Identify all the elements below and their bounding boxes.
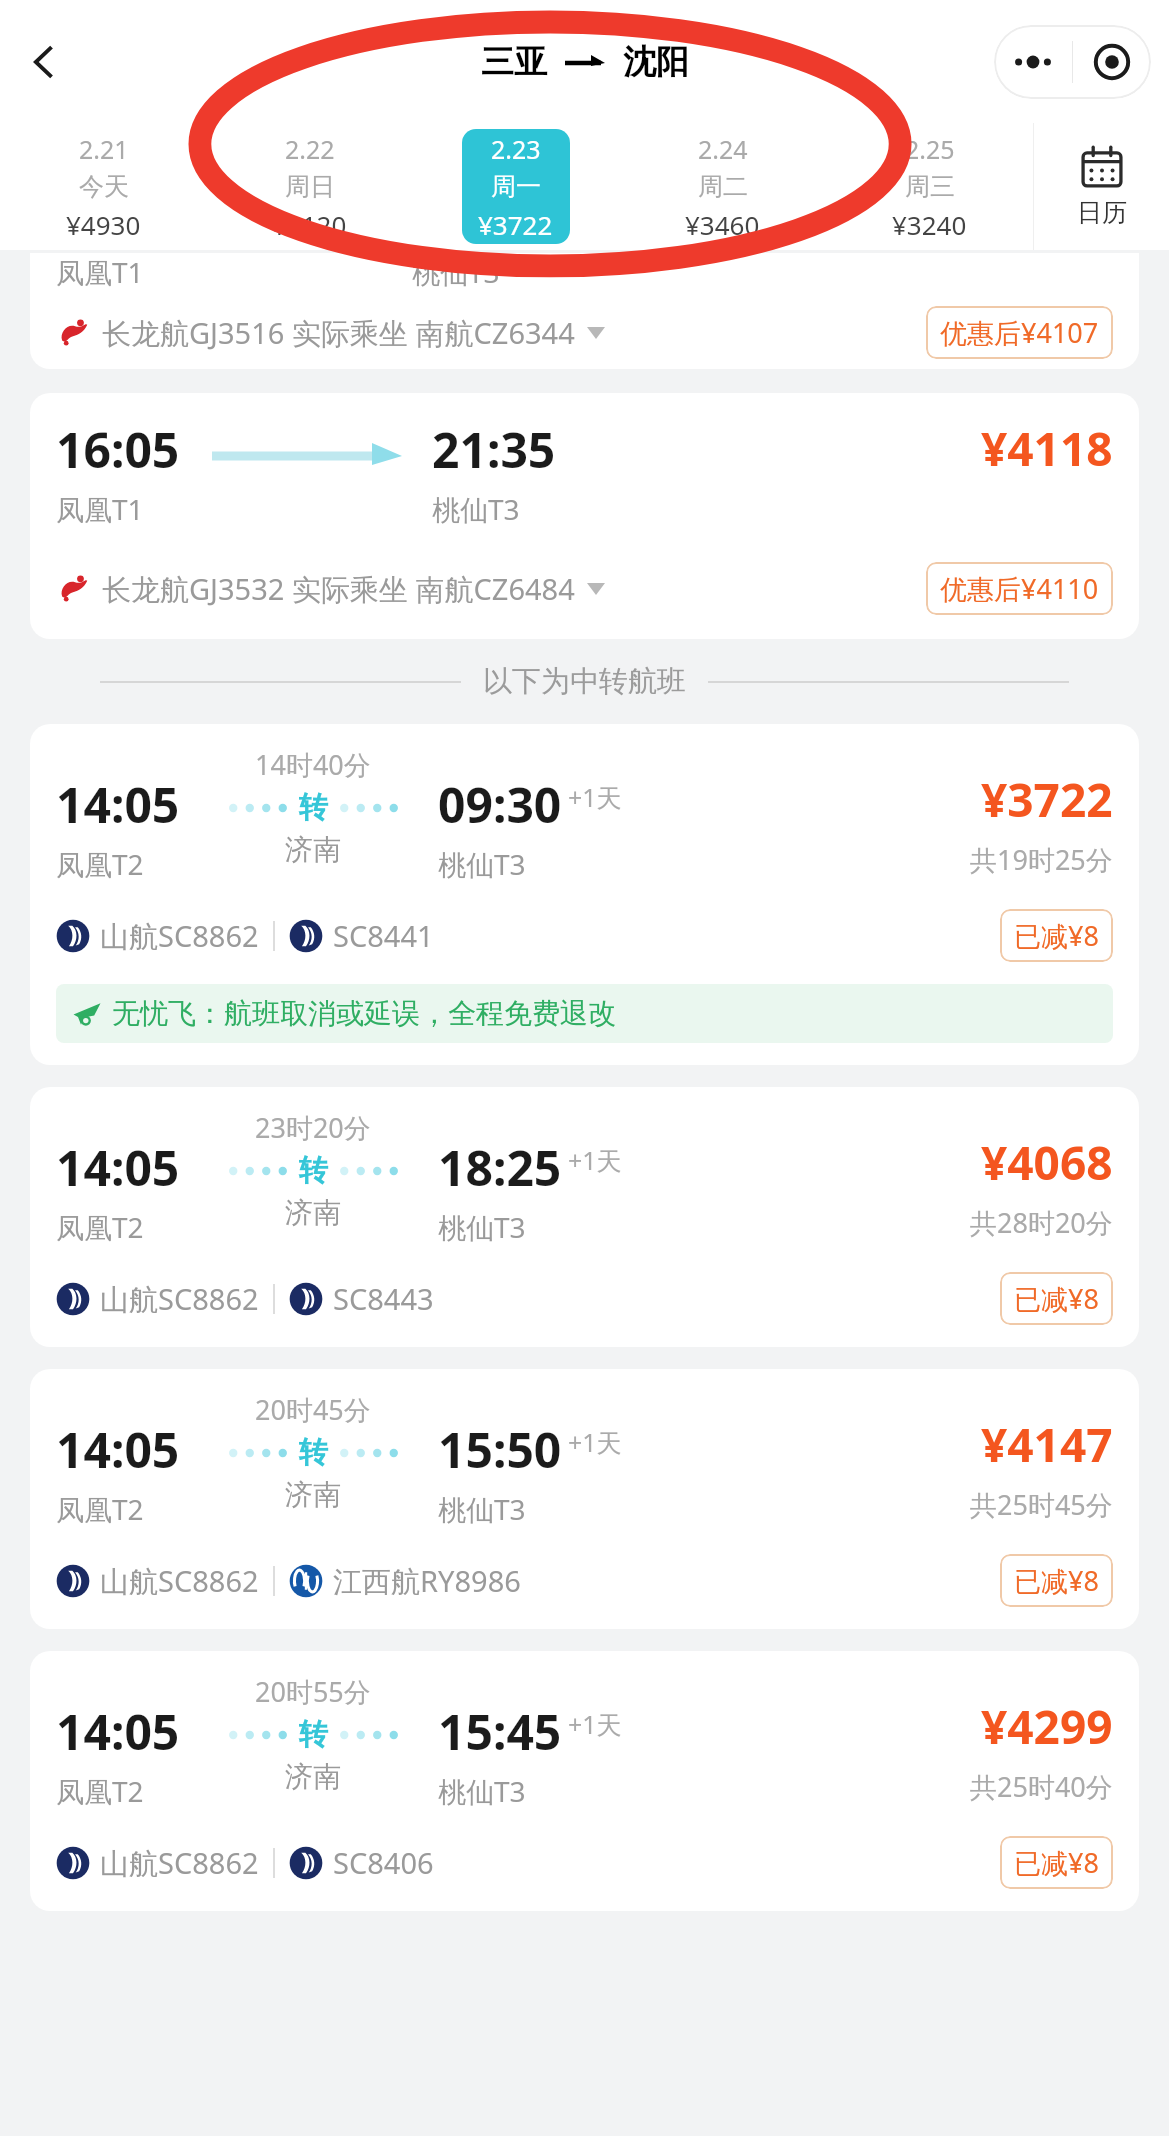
staticText: 山航SC8862 bbox=[100, 1279, 259, 1319]
staticText: 桃仙T3 bbox=[438, 845, 526, 883]
staticText: 江西航RY8986 bbox=[333, 1561, 521, 1601]
staticText: 凤凰T2 bbox=[56, 1208, 144, 1246]
staticText: SC8443 bbox=[333, 1279, 434, 1318]
staticText: 长龙航GJ3516 实际乘坐 南航CZ6344 bbox=[102, 313, 575, 353]
staticText: 山航SC8862 bbox=[100, 1561, 259, 1601]
staticText: 济南 bbox=[285, 1195, 341, 1230]
staticText: 已减¥8 bbox=[1014, 1844, 1099, 1881]
staticText: +1天 bbox=[568, 1707, 622, 1741]
staticText: 凤凰T1 bbox=[56, 253, 144, 291]
button[interactable]: Back bbox=[16, 34, 72, 90]
staticText: 沈阳 bbox=[623, 41, 689, 83]
staticText: ¥4147 bbox=[981, 1413, 1113, 1476]
staticText: 共28时20分 bbox=[970, 1204, 1113, 1241]
staticText: 2.22 bbox=[285, 132, 335, 166]
staticText: 济南 bbox=[285, 1477, 341, 1512]
staticText: 21:35 bbox=[432, 417, 556, 482]
staticText: ¥3722 bbox=[478, 207, 553, 242]
button[interactable]: 14:05 bbox=[30, 1087, 1139, 1347]
staticText: 无忧飞：航班取消或延误，全程免费退改 bbox=[112, 996, 616, 1031]
staticText: 以下为中转航班 bbox=[483, 663, 686, 700]
button[interactable]: 2.24 bbox=[619, 123, 826, 250]
staticText: 已减¥8 bbox=[1014, 1280, 1099, 1317]
staticText: 转 bbox=[299, 789, 328, 826]
button[interactable]: 优惠后¥4107 bbox=[940, 314, 1099, 351]
staticText: 转 bbox=[299, 1716, 328, 1753]
button[interactable]: Calendar bbox=[1034, 123, 1169, 250]
staticText: 济南 bbox=[285, 832, 341, 867]
button[interactable]: 已减¥8 bbox=[1014, 917, 1099, 954]
button[interactable]: 已减¥8 bbox=[1014, 1280, 1099, 1317]
staticText: 周日 bbox=[285, 171, 335, 202]
staticText: ¥3460 bbox=[685, 207, 760, 242]
staticText: +1天 bbox=[568, 1425, 622, 1459]
staticText: 已减¥8 bbox=[1014, 1562, 1099, 1599]
staticText: 14时40分 bbox=[255, 746, 371, 783]
button[interactable]: 14:05 bbox=[30, 1651, 1139, 1911]
staticText: 14:05 bbox=[56, 1135, 180, 1200]
staticText: 优惠后¥4107 bbox=[940, 314, 1099, 351]
button[interactable]: 14:05 bbox=[30, 1369, 1139, 1629]
staticText: 18:25 bbox=[438, 1135, 562, 1200]
staticText: +1天 bbox=[568, 1143, 622, 1177]
staticText: 桃仙T3 bbox=[438, 1772, 526, 1810]
staticText: 三亚 bbox=[481, 41, 547, 83]
staticText: 2.21 bbox=[79, 132, 129, 166]
staticText: 共25时45分 bbox=[970, 1486, 1113, 1523]
staticText: 优惠后¥4110 bbox=[940, 570, 1099, 607]
staticText: 桃仙T3 bbox=[412, 253, 500, 291]
button[interactable]: 已减¥8 bbox=[1014, 1562, 1099, 1599]
staticText: ¥4299 bbox=[981, 1695, 1113, 1758]
staticText: 山航SC8862 bbox=[100, 1843, 259, 1883]
staticText: +1天 bbox=[568, 780, 622, 814]
staticText: SC8406 bbox=[333, 1843, 434, 1882]
staticText: 转 bbox=[299, 1152, 328, 1189]
staticText: 山航SC8862 bbox=[100, 916, 259, 956]
staticText: 凤凰T2 bbox=[56, 1772, 144, 1810]
button[interactable]: 16:05 bbox=[30, 393, 1139, 639]
staticText: 凤凰T2 bbox=[56, 1490, 144, 1528]
staticText: 桃仙T3 bbox=[438, 1490, 526, 1528]
staticText: 20时55分 bbox=[255, 1673, 371, 1710]
button[interactable]: Target bbox=[1073, 25, 1151, 99]
button[interactable]: 2.25 bbox=[826, 123, 1033, 250]
staticText: ¥3722 bbox=[981, 768, 1113, 831]
button[interactable]: 2.21 bbox=[0, 123, 206, 250]
staticText: 2.23 bbox=[491, 132, 541, 166]
staticText: 长龙航GJ3532 实际乘坐 南航CZ6484 bbox=[102, 569, 575, 609]
staticText: 14:05 bbox=[56, 1417, 180, 1482]
staticText: 共19时25分 bbox=[970, 841, 1113, 878]
staticText: 周二 bbox=[698, 171, 748, 202]
staticText: SC8441 bbox=[333, 916, 434, 955]
button[interactable]: 14:05 bbox=[30, 724, 1139, 1065]
button[interactable]: More options bbox=[994, 25, 1072, 99]
button[interactable]: 2.22 bbox=[206, 123, 412, 250]
staticText: ¥4068 bbox=[981, 1131, 1113, 1194]
staticText: 20时45分 bbox=[255, 1391, 371, 1428]
staticText: 周一 bbox=[491, 171, 541, 202]
staticText: ¥4120 bbox=[272, 207, 347, 242]
staticText: 14:05 bbox=[56, 772, 180, 837]
button[interactable]: 2.23 bbox=[412, 123, 619, 250]
staticText: 凤凰T1 bbox=[56, 490, 144, 528]
staticText: 15:45 bbox=[438, 1699, 562, 1764]
staticText: 16:05 bbox=[56, 417, 180, 482]
button[interactable]: 优惠后¥4110 bbox=[940, 570, 1099, 607]
staticText: 14:05 bbox=[56, 1699, 180, 1764]
staticText: 桃仙T3 bbox=[438, 1208, 526, 1246]
button[interactable]: 凤凰T1 bbox=[30, 253, 1139, 369]
staticText: ¥4118 bbox=[981, 417, 1113, 480]
staticText: 23时20分 bbox=[255, 1109, 371, 1146]
staticText: 15:50 bbox=[438, 1417, 562, 1482]
staticText: 今天 bbox=[79, 171, 129, 202]
staticText: ¥3240 bbox=[892, 207, 967, 242]
staticText: 日历 bbox=[1077, 197, 1127, 228]
staticText: ¥4930 bbox=[66, 207, 141, 242]
button[interactable]: 已减¥8 bbox=[1014, 1844, 1099, 1881]
staticText: 周三 bbox=[905, 171, 955, 202]
staticText: 凤凰T2 bbox=[56, 845, 144, 883]
staticText: 共25时40分 bbox=[970, 1768, 1113, 1805]
staticText: 已减¥8 bbox=[1014, 917, 1099, 954]
staticText: 桃仙T3 bbox=[432, 490, 520, 528]
staticText: 2.24 bbox=[698, 132, 748, 166]
